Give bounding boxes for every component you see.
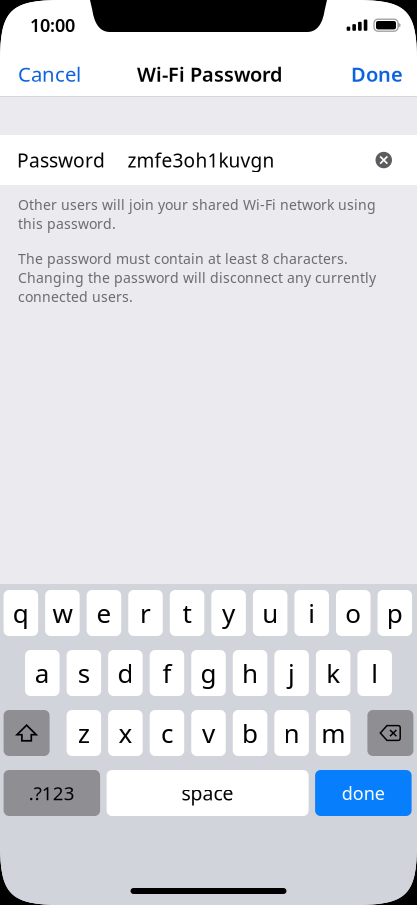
staticText: g	[200, 655, 216, 691]
button[interactable]: q	[4, 590, 38, 636]
staticText: w	[52, 595, 72, 631]
button[interactable]: x	[108, 710, 143, 756]
button[interactable]: Clear text	[375, 152, 392, 168]
staticText: s	[78, 655, 90, 691]
staticText: t	[182, 595, 191, 631]
button[interactable]: p	[378, 590, 412, 636]
button[interactable]: y	[211, 590, 246, 636]
button[interactable]: Password	[0, 135, 417, 185]
staticText: n	[284, 715, 300, 751]
staticText: l	[371, 655, 378, 691]
button[interactable]: done	[315, 770, 412, 816]
button[interactable]: v	[191, 710, 226, 756]
staticText: Cancel	[18, 60, 81, 88]
staticText: b	[242, 715, 258, 751]
staticText: d	[117, 655, 133, 691]
staticText: h	[242, 655, 258, 691]
button[interactable]: f	[150, 650, 184, 696]
button[interactable]: Shift	[4, 710, 50, 756]
staticText: o	[345, 595, 361, 631]
staticText: space	[182, 780, 234, 806]
button[interactable]: z	[67, 710, 101, 756]
staticText: j	[288, 655, 295, 691]
staticText: u	[262, 595, 278, 631]
staticText: p	[387, 595, 403, 631]
button[interactable]: .?123	[4, 770, 100, 816]
button[interactable]: s	[67, 650, 101, 696]
button[interactable]: o	[336, 590, 370, 636]
staticText: done	[342, 781, 385, 805]
staticText: The password must contain at least 8 cha…	[18, 249, 376, 306]
button[interactable]: Cancel	[18, 52, 96, 96]
staticText: k	[326, 655, 340, 691]
staticText: Other users will join your shared Wi-Fi …	[18, 195, 376, 233]
staticText: x	[118, 715, 132, 751]
button[interactable]: Delete	[367, 710, 413, 756]
button[interactable]: Done	[339, 52, 403, 96]
button[interactable]: e	[87, 590, 121, 636]
button[interactable]: w	[45, 590, 80, 636]
button[interactable]: t	[170, 590, 204, 636]
staticText: .?123	[29, 780, 75, 806]
staticText: a	[35, 655, 50, 691]
staticText: y	[222, 595, 235, 631]
button[interactable]: h	[233, 650, 267, 696]
staticText: Password	[17, 147, 105, 173]
button[interactable]: c	[150, 710, 184, 756]
button[interactable]: space	[107, 770, 309, 816]
staticText: 10:00	[30, 13, 75, 37]
button[interactable]: j	[274, 650, 309, 696]
staticText: e	[96, 595, 111, 631]
button[interactable]: u	[253, 590, 287, 636]
button[interactable]: l	[357, 650, 392, 696]
button[interactable]: b	[233, 710, 267, 756]
button[interactable]: m	[316, 710, 350, 756]
button[interactable]: a	[25, 650, 60, 696]
button[interactable]: r	[128, 590, 163, 636]
staticText: z	[78, 715, 90, 751]
staticText: r	[140, 595, 151, 631]
button[interactable]: k	[316, 650, 350, 696]
staticText: c	[161, 715, 173, 751]
staticText: Wi-Fi Password	[137, 60, 282, 88]
button[interactable]: i	[294, 590, 329, 636]
staticText: i	[308, 595, 315, 631]
staticText: zmfe3oh1kuvgn	[127, 147, 274, 173]
staticText: m	[321, 715, 345, 751]
staticText: Done	[351, 60, 403, 88]
button[interactable]: g	[191, 650, 226, 696]
staticText: f	[162, 655, 171, 691]
button[interactable]: n	[274, 710, 309, 756]
button[interactable]: d	[108, 650, 143, 696]
staticText: q	[13, 595, 29, 631]
staticText: v	[202, 715, 215, 751]
